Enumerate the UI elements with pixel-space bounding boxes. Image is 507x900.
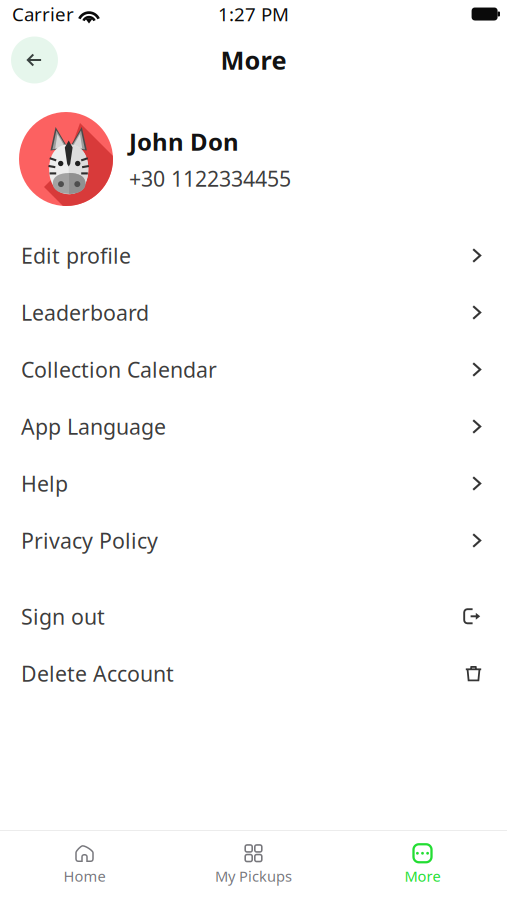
staticText: Edit profile	[21, 241, 131, 270]
button[interactable]: Help	[0, 455, 507, 512]
staticText: Carrier	[12, 2, 74, 26]
staticText: John Don	[129, 125, 239, 157]
button[interactable]: Home	[0, 839, 169, 891]
staticText: Sign out	[21, 602, 105, 631]
staticText: 1:27 PM	[218, 2, 289, 26]
staticText: App Language	[21, 412, 166, 441]
staticText: More	[404, 866, 440, 886]
button[interactable]: Delete Account	[0, 645, 507, 702]
staticText: More	[220, 43, 286, 77]
staticText: Home	[63, 866, 105, 886]
button[interactable]: Sign out	[0, 588, 507, 645]
button[interactable]: Collection Calendar	[0, 341, 507, 398]
staticText: +30 1122334455	[129, 164, 291, 193]
button[interactable]: Back	[11, 36, 58, 83]
button[interactable]: Leaderboard	[0, 284, 507, 341]
staticText: Delete Account	[21, 659, 174, 688]
staticText: My Pickups	[215, 866, 292, 886]
button[interactable]: Edit profile	[0, 227, 507, 284]
button[interactable]: App Language	[0, 398, 507, 455]
button[interactable]: More	[338, 839, 507, 891]
staticText: Privacy Policy	[21, 526, 158, 555]
staticText: Collection Calendar	[21, 355, 217, 384]
button[interactable]: My Pickups	[169, 839, 338, 891]
button[interactable]: Privacy Policy	[0, 512, 507, 569]
staticText: Leaderboard	[21, 298, 149, 327]
staticText: Help	[21, 469, 68, 498]
